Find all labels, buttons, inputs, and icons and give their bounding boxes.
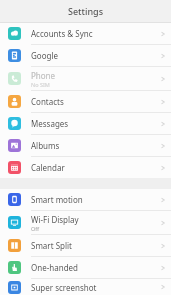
staticText: Albums	[31, 140, 60, 151]
button[interactable]: Google	[0, 45, 171, 66]
button[interactable]: Accounts & Sync	[0, 23, 171, 44]
button[interactable]: Messages	[0, 113, 171, 134]
button[interactable]: Phone	[0, 67, 171, 90]
staticText: Contacts	[31, 96, 64, 107]
button[interactable]: Super screenshot	[0, 279, 171, 295]
staticText: Phone	[31, 70, 56, 81]
button[interactable]: One-handed	[0, 257, 171, 278]
staticText: Calendar	[31, 162, 65, 173]
staticText: Super screenshot	[31, 282, 97, 293]
staticText: Settings	[68, 5, 104, 17]
staticText: No SIM	[31, 81, 50, 88]
button[interactable]: Contacts	[0, 91, 171, 112]
button[interactable]: Albums	[0, 135, 171, 156]
staticText: Off	[31, 225, 40, 232]
button[interactable]: Smart Split	[0, 235, 171, 256]
button[interactable]: Wi-Fi Display	[0, 211, 171, 234]
button[interactable]: Smart motion	[0, 189, 171, 210]
staticText: Smart Split	[31, 240, 72, 251]
button[interactable]: Calendar	[0, 157, 171, 178]
staticText: Messages	[31, 118, 69, 129]
staticText: Google	[31, 50, 58, 61]
staticText: Accounts & Sync	[31, 28, 93, 39]
staticText: Smart motion	[31, 194, 83, 205]
staticText: Wi-Fi Display	[31, 214, 79, 225]
staticText: One-handed	[31, 262, 79, 273]
